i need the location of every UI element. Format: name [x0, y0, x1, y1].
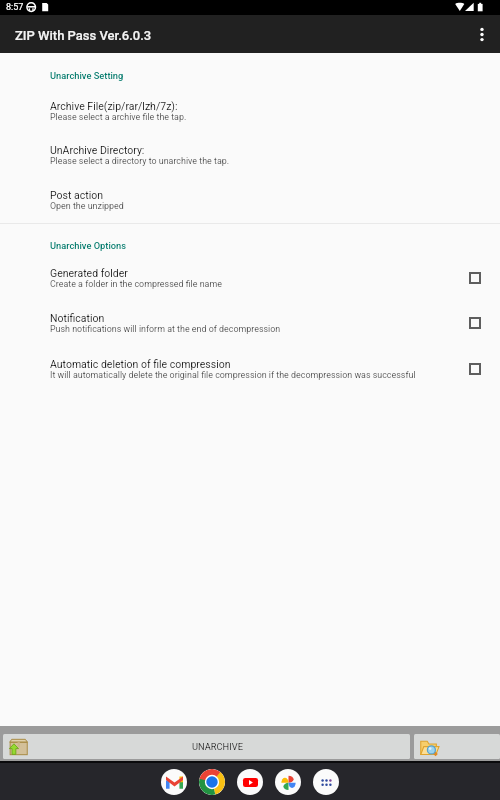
button[interactable]: All apps [313, 769, 339, 795]
staticText: UNARCHIVE [192, 741, 243, 752]
staticText: UnArchive Directory: [50, 144, 145, 156]
staticText: Unarchive Options [50, 240, 127, 251]
staticText: Post action [50, 189, 103, 201]
button[interactable]: Photos [275, 769, 301, 795]
button[interactable]: More options [464, 15, 500, 53]
button[interactable]: Gmail [161, 769, 187, 795]
button[interactable]: YouTube [237, 769, 263, 795]
staticText: Push notifications will inform at the en… [50, 324, 281, 334]
staticText: 8:57 [6, 2, 24, 13]
staticText: Notification [50, 312, 105, 324]
button[interactable]: Chrome [199, 769, 225, 795]
button[interactable]: Automatic deletion of file compression [0, 350, 500, 386]
staticText: Please select a archive file the tap. [50, 112, 187, 122]
button[interactable]: Browse folder [414, 734, 500, 759]
staticText: Create a folder in the compressed file n… [50, 279, 222, 289]
button[interactable]: Post action [0, 181, 500, 217]
staticText: Unarchive Setting [50, 70, 124, 81]
staticText: It will automatically delete the origina… [50, 370, 416, 380]
staticText: Archive File(zip/rar/lzh/7z): [50, 100, 178, 112]
staticText: Open the unzipped [50, 201, 124, 211]
staticText: Please select a directory to unarchive t… [50, 156, 230, 166]
staticText: Automatic deletion of file compression [50, 358, 231, 370]
staticText: ZIP With Pass Ver.6.0.3 [15, 28, 152, 43]
button[interactable]: Generated folder [0, 259, 500, 295]
button[interactable]: Archive File(zip/rar/lzh/7z): [0, 92, 500, 128]
button[interactable]: UNARCHIVE [3, 734, 410, 759]
button[interactable]: UnArchive Directory: [0, 136, 500, 172]
button[interactable]: Notification [0, 304, 500, 340]
staticText: Generated folder [50, 267, 128, 279]
